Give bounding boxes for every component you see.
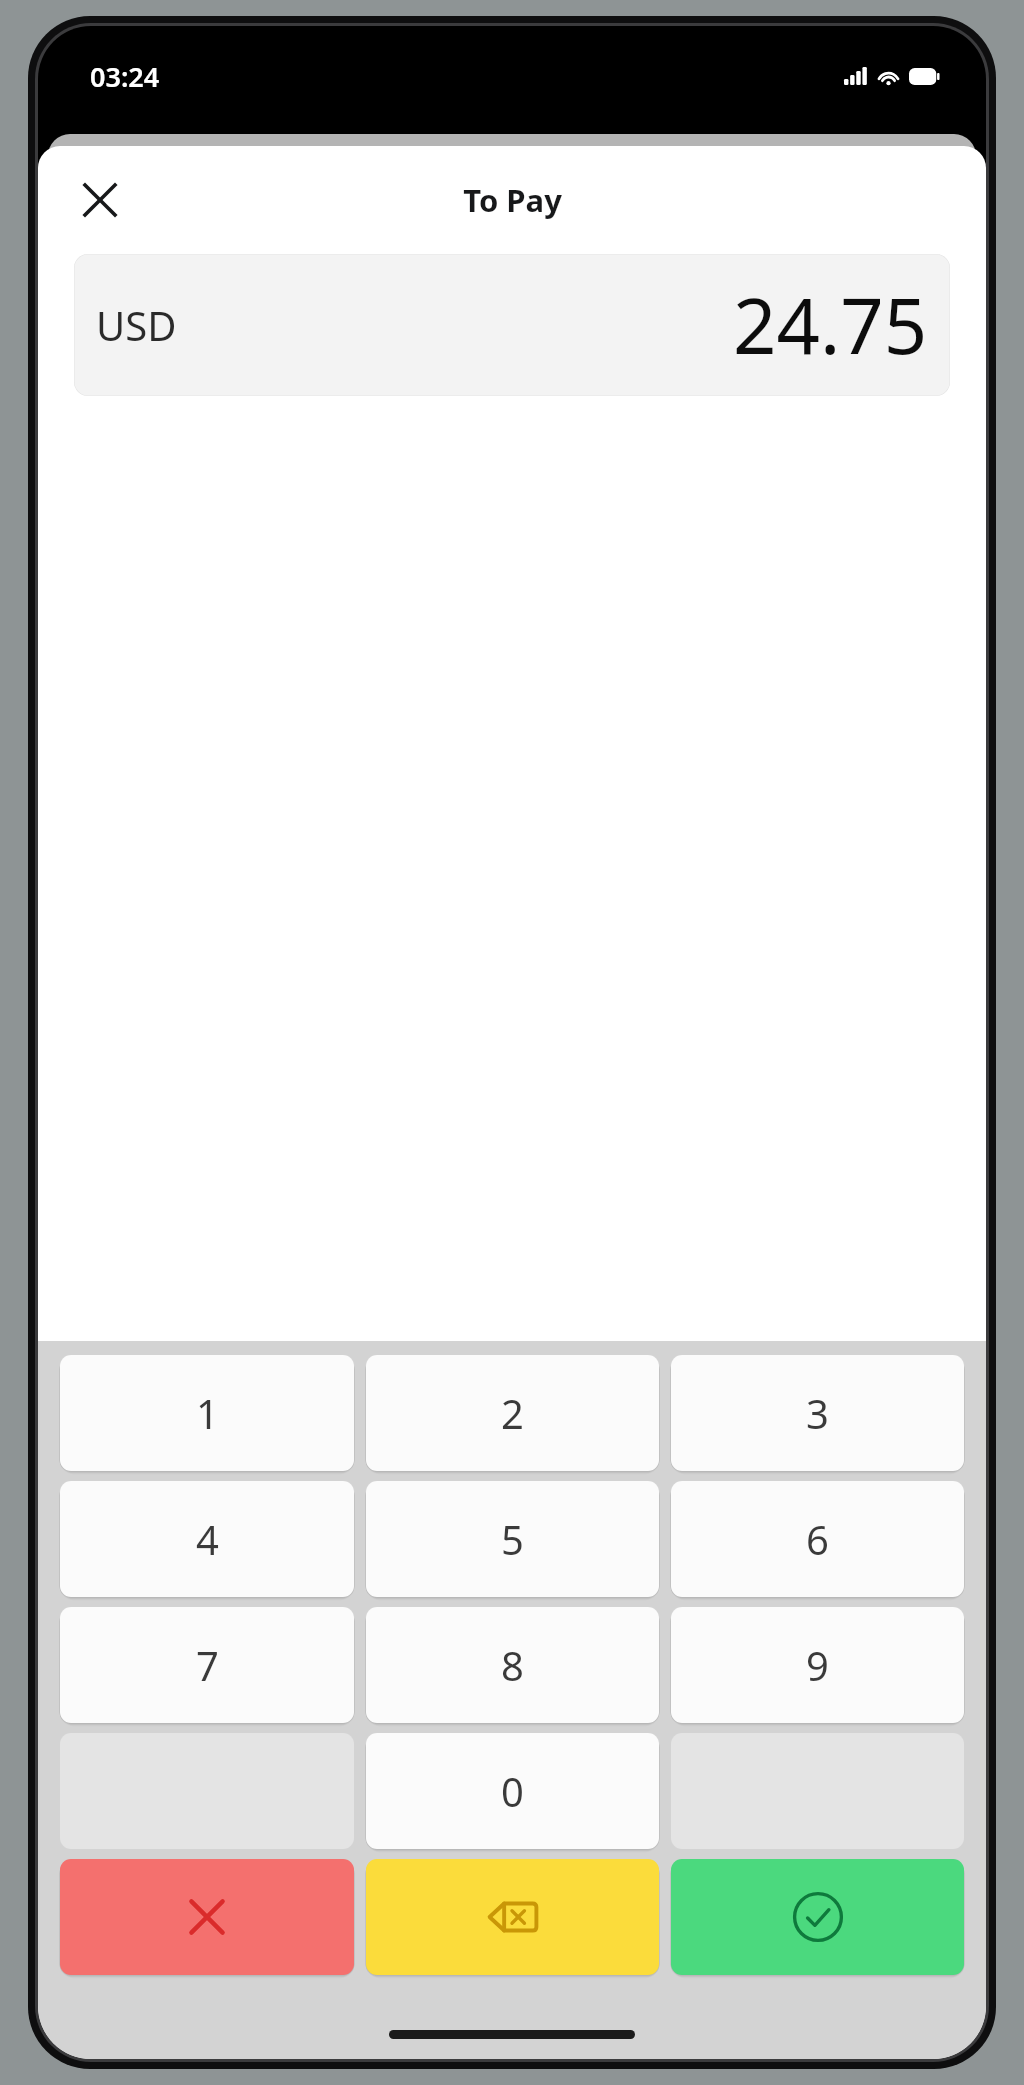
button[interactable]: USD: [74, 254, 950, 396]
staticText: 3: [806, 1386, 829, 1440]
button[interactable]: 3: [671, 1355, 964, 1471]
staticText: 8: [501, 1638, 524, 1692]
button[interactable]: 7: [60, 1607, 354, 1723]
button[interactable]: Cancel: [60, 1859, 354, 1975]
button[interactable]: Confirm: [671, 1859, 964, 1975]
button[interactable]: 1: [60, 1355, 354, 1471]
staticText: 1: [196, 1386, 219, 1440]
button[interactable]: 9: [671, 1607, 964, 1723]
staticText: 03:24: [90, 58, 160, 95]
staticText: 9: [806, 1638, 829, 1692]
staticText: 0: [501, 1764, 524, 1818]
staticText: To Pay: [463, 179, 562, 221]
staticText: 4: [196, 1512, 219, 1566]
staticText: 2: [501, 1386, 524, 1440]
staticText: 5: [501, 1512, 524, 1566]
button[interactable]: 2: [366, 1355, 659, 1471]
button[interactable]: Close: [68, 168, 132, 232]
staticText: 6: [806, 1512, 829, 1566]
button[interactable]: 6: [671, 1481, 964, 1597]
button[interactable]: 0: [366, 1733, 659, 1849]
button[interactable]: 5: [366, 1481, 659, 1597]
staticText: 24.75: [733, 273, 928, 377]
staticText: 7: [196, 1638, 219, 1692]
button[interactable]: Backspace: [366, 1859, 659, 1975]
staticText: USD: [96, 298, 177, 352]
button[interactable]: 4: [60, 1481, 354, 1597]
button[interactable]: 8: [366, 1607, 659, 1723]
